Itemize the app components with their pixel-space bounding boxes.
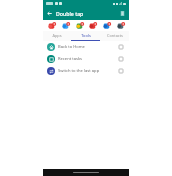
button[interactable]: App 2 [74,20,85,31]
button[interactable]: Select Back to Home [117,43,125,51]
button[interactable]: Contacts [100,31,129,40]
button[interactable]: Tools [71,31,100,40]
staticText: Apps [52,33,62,38]
button[interactable]: App 0 [46,20,57,31]
button[interactable]: App 3 [87,20,98,31]
button[interactable]: Select Recent tasks [117,55,125,63]
button[interactable]: Navigate up [45,9,54,18]
staticText: Tools [81,33,91,38]
staticText: Contacts [107,33,123,38]
button[interactable]: Help [118,9,127,18]
button[interactable]: App 1 [60,20,71,31]
staticText: Double tap [56,10,84,17]
button[interactable]: Apps [43,31,71,40]
button[interactable]: App 5 [115,20,126,31]
button[interactable]: Select Switch to the last app [117,67,125,75]
button[interactable]: Switch to the last app [43,65,129,77]
button[interactable]: App 4 [101,20,112,31]
staticText: Switch to the last app [58,68,117,74]
button[interactable]: Back to Home [43,41,129,53]
staticText: Back to Home [58,44,117,50]
button[interactable]: Recent tasks [43,53,129,65]
staticText: Recent tasks [58,56,117,62]
